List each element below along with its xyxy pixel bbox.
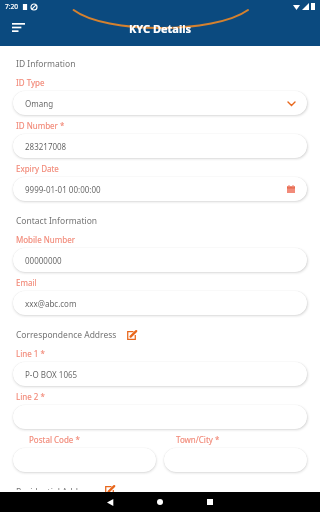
staticText: Email [16,277,37,288]
staticText: ID Type [16,77,45,88]
staticText: Line 2 * [16,391,45,402]
staticText: xxx@abc.com [25,298,295,309]
staticText: P-O BOX 1065 [25,369,295,380]
button[interactable]: Recent apps [196,492,224,512]
staticText: 00000000 [25,255,295,266]
staticText: ID Number * [16,120,65,131]
button[interactable]: 00000000 [13,248,307,272]
button[interactable]: Edit Residential Address [103,486,115,490]
staticText: Correspondence Address [16,329,117,341]
staticText: ID Information [16,58,76,70]
button[interactable]: Back [96,492,124,512]
button[interactable]: Edit Correspondence Address [125,329,137,341]
button[interactable]: P-O BOX 1065 [13,362,307,386]
staticText: Omang [25,98,288,109]
staticText: Residential Address [16,486,95,490]
button[interactable]: Omang [13,91,307,115]
button[interactable]: 9999-01-01 00:00:00 [13,177,307,201]
staticText: 9999-01-01 00:00:00 [25,184,287,195]
staticText: Contact Information [16,215,98,227]
staticText: Mobile Number [16,234,75,245]
button[interactable]: xxx@abc.com [13,291,307,315]
staticText: Expiry Date [16,163,59,174]
staticText: Postal Code * [29,434,80,445]
staticText: Town/City * [176,434,220,445]
staticText: 283217008 [25,141,295,152]
button[interactable]: Home [146,492,174,512]
button[interactable]: 283217008 [13,134,307,158]
staticText: KYC Details [129,21,191,36]
staticText: 7:20 [5,2,18,11]
button[interactable]: Menu [8,17,28,37]
staticText: Line 1 * [16,348,45,359]
